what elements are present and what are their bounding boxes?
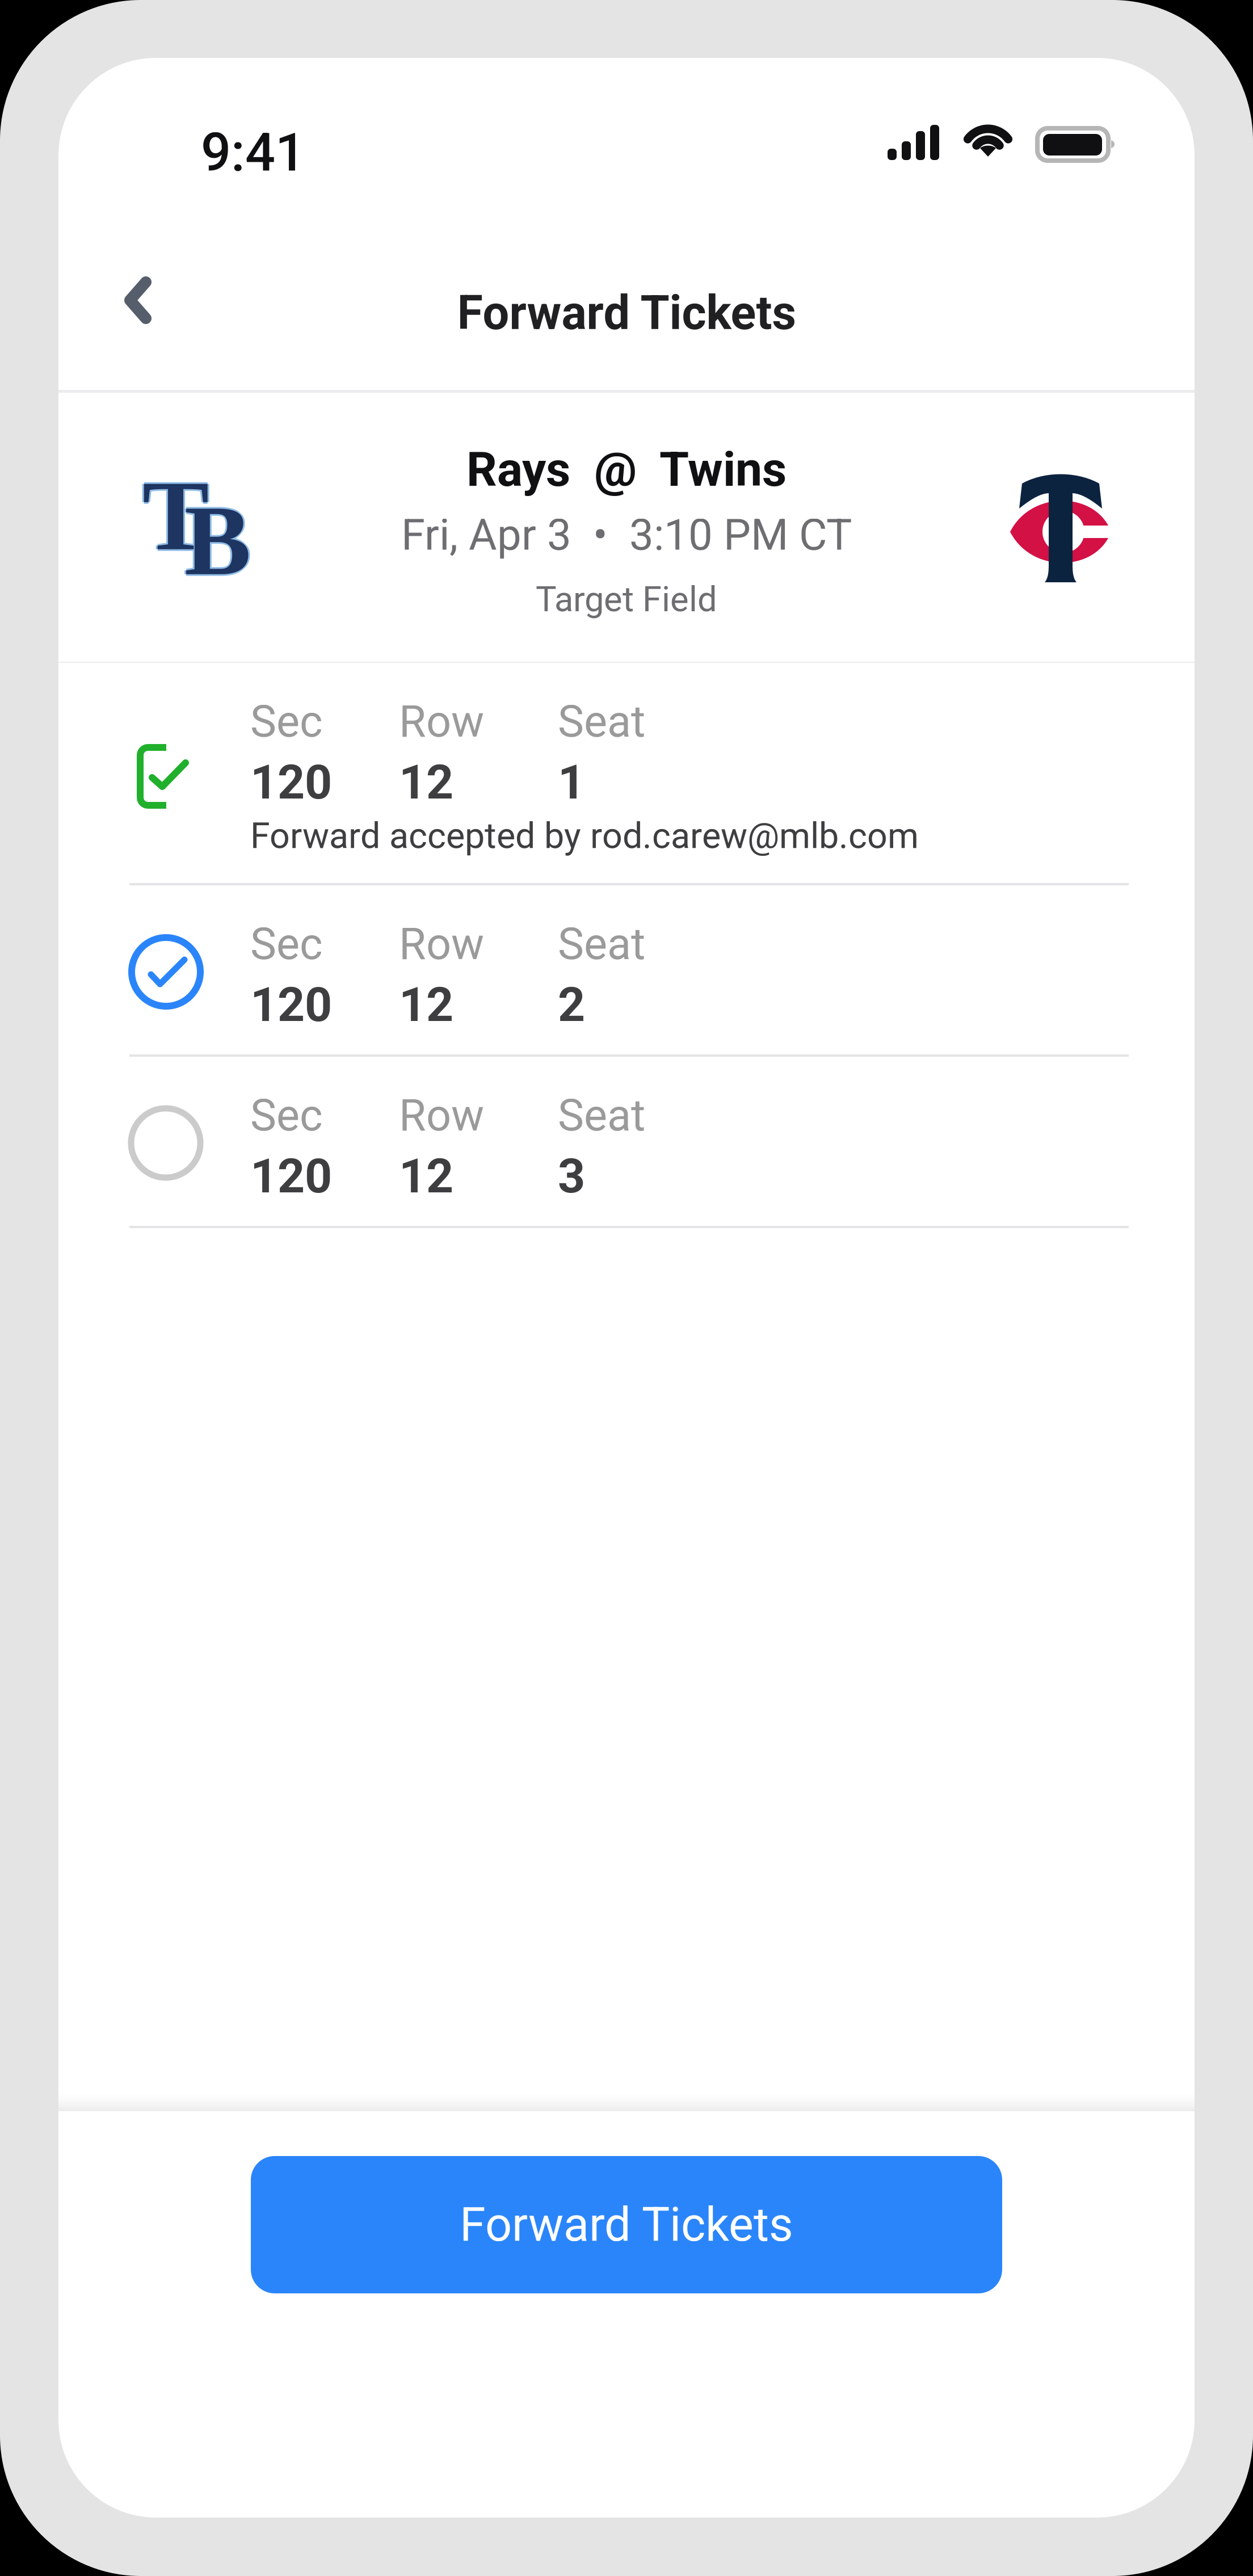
staticText: B	[184, 485, 251, 596]
staticText: 120	[250, 754, 332, 810]
staticText: 12	[399, 977, 453, 1033]
staticText: Rays @ Twins	[466, 442, 787, 497]
staticText: T	[142, 460, 209, 571]
staticText: 2	[558, 977, 585, 1033]
button[interactable]: Back	[90, 247, 198, 355]
staticText: 9:41	[201, 121, 305, 184]
staticText: T	[144, 460, 211, 571]
staticText: B	[186, 485, 253, 596]
button[interactable]: Sec	[58, 885, 1195, 1057]
staticText: Sec	[250, 696, 322, 747]
staticText: Forward Tickets	[457, 285, 796, 340]
staticText: 120	[250, 1148, 332, 1204]
staticText: B	[184, 484, 251, 594]
staticText: B	[184, 487, 251, 598]
staticText: Sec	[250, 1090, 322, 1141]
staticText: Row	[399, 696, 484, 747]
staticText: B	[183, 485, 249, 596]
button[interactable]: Sec	[58, 1057, 1195, 1228]
staticText: Seat	[558, 696, 645, 747]
staticText: 1	[558, 754, 585, 810]
staticText: T	[141, 460, 207, 571]
staticText: Forward Tickets	[460, 2197, 793, 2252]
staticText: Fri, Apr 3 • 3:10 PM CT	[401, 510, 852, 560]
staticText: 12	[399, 754, 453, 810]
staticText: Row	[399, 1090, 484, 1141]
staticText: Seat	[558, 918, 645, 970]
staticText: T	[142, 462, 209, 573]
staticText: Row	[399, 918, 484, 970]
staticText: Sec	[250, 918, 322, 970]
staticText: 3	[558, 1148, 585, 1204]
staticText: Forward accepted by rod.carew@mlb.com	[250, 815, 919, 857]
button[interactable]: Forward Tickets	[251, 2156, 1002, 2293]
staticText: 120	[250, 977, 332, 1033]
button[interactable]: Sec	[58, 663, 1195, 885]
staticText: Target Field	[536, 579, 717, 620]
staticText: Seat	[558, 1090, 645, 1141]
staticText: T	[142, 459, 209, 569]
staticText: 12	[399, 1148, 453, 1204]
